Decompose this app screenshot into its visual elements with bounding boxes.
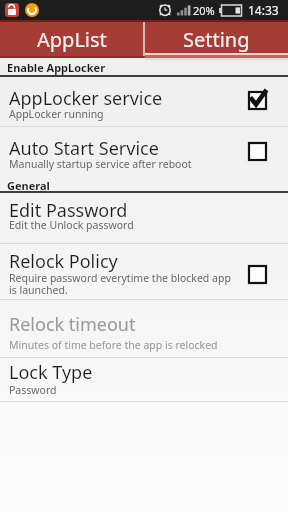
staticText: Lock Type xyxy=(9,360,93,385)
staticText: Edit Password xyxy=(9,198,128,223)
button[interactable]: Relock timeout xyxy=(0,300,288,357)
staticText: Minutes of time before the app is relock… xyxy=(9,338,218,352)
button[interactable]: Relock Policy xyxy=(0,244,288,299)
staticText: 20% xyxy=(193,3,215,18)
staticText: Edit the Unlock password xyxy=(9,218,134,232)
staticText: General xyxy=(7,178,50,193)
staticText: Require password everytime the blocked a… xyxy=(9,271,231,297)
staticText: Manually startup service after reboot xyxy=(9,157,192,171)
button[interactable]: AppLocker service xyxy=(0,77,288,126)
button[interactable]: AppList xyxy=(0,20,144,58)
staticText: AppList xyxy=(37,26,107,53)
staticText: AppLocker service xyxy=(9,86,163,111)
staticText: Relock timeout xyxy=(9,312,136,337)
button[interactable]: Lock Type xyxy=(0,358,288,401)
button[interactable]: Setting xyxy=(144,20,288,58)
button[interactable]: Auto Start Service xyxy=(0,127,288,171)
staticText: Enable AppLocker xyxy=(7,60,106,75)
staticText: AppLocker running xyxy=(9,107,104,121)
staticText: Setting xyxy=(183,26,250,53)
staticText: Relock Policy xyxy=(9,249,118,274)
button[interactable]: Edit Password xyxy=(0,193,288,243)
staticText: Auto Start Service xyxy=(9,136,159,161)
staticText: Password xyxy=(9,383,57,397)
staticText: 14:33 xyxy=(248,2,279,18)
